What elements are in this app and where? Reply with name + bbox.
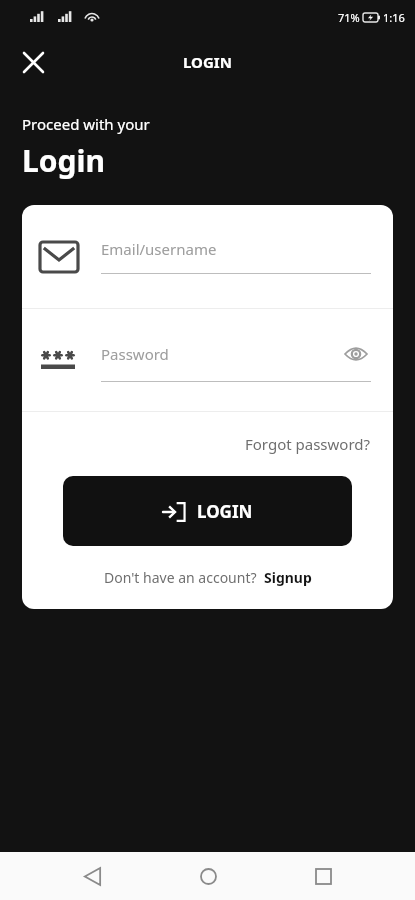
button[interactable]: Recents [299,852,347,900]
button[interactable]: Email/username [22,205,393,308]
staticText: 1:16 [383,10,405,25]
staticText: 71% [338,10,360,25]
button[interactable]: LOGIN [63,476,352,546]
staticText: Don't have an account? [104,568,257,587]
staticText: Login [22,140,105,181]
button[interactable]: Don't have an account? [22,568,393,587]
button[interactable]: Home [184,852,232,900]
button[interactable]: Forgot password? [245,434,371,454]
staticText: LOGIN [183,52,232,72]
button[interactable]: Close [10,39,56,85]
button[interactable]: Show password [341,339,371,369]
staticText: LOGIN [197,500,253,523]
staticText: Email/username [101,239,217,259]
staticText: Signup [264,568,312,587]
button[interactable]: Password [22,309,393,411]
button[interactable]: Back [68,852,116,900]
staticText: Forgot password? [245,434,371,454]
staticText: Password [101,344,341,364]
staticText: Proceed with your [22,114,150,134]
